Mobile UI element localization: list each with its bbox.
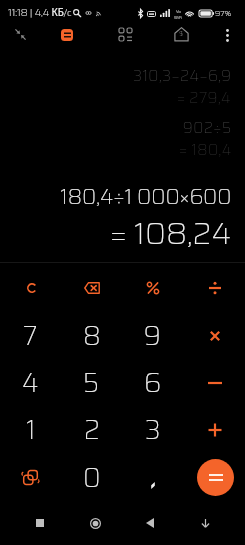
button[interactable]: Clear [1,264,62,311]
button[interactable]: % [122,264,183,311]
button[interactable]: 4 [0,359,61,406]
staticText: = 279,4 [177,86,232,110]
staticText: 310,3−24−6,9 [133,64,232,88]
button[interactable]: Home [80,508,110,538]
staticText: 4 [22,362,39,403]
staticText: = 108,24 [110,209,232,253]
button[interactable]: 3 [122,406,183,453]
button[interactable]: Minus [184,359,245,406]
button[interactable]: 7 [0,312,61,359]
button[interactable]: More options [212,22,242,48]
button[interactable]: 0 [61,454,122,501]
button[interactable]: Collapse [4,21,36,47]
staticText: 0 [83,457,101,498]
button[interactable]: 6 [122,359,183,406]
button[interactable]: Converter [110,21,140,47]
button[interactable]: 8 [61,312,122,359]
button[interactable]: Scientific mode [52,22,82,48]
button[interactable]: 2 [61,406,122,453]
staticText: 180,4÷1 000×600 [60,180,232,213]
button[interactable]: Back [135,508,165,538]
button[interactable]: Multiply [184,312,245,359]
staticText: $ [179,27,184,40]
staticText: 5 [83,362,100,403]
staticText: = 180,4 [179,138,232,162]
staticText: 2 [84,409,100,450]
staticText: 11:18 | 4,4 КБ/c [8,5,72,21]
button[interactable]: Recent apps [25,508,55,538]
button[interactable]: Backspace [61,264,122,311]
button[interactable]: 9 [122,312,183,359]
button[interactable]: Hide keyboard [190,508,220,538]
button[interactable]: Divide [184,264,245,311]
staticText: 8 [83,315,101,356]
button[interactable]: 1 [0,406,61,453]
staticText: 6 [144,362,161,403]
staticText: 902÷5 [183,116,232,140]
button[interactable]: Unit converter [0,454,61,501]
button[interactable]: Equals [197,459,234,496]
button[interactable]: , [122,454,183,501]
staticText: 97% [215,7,232,20]
staticText: 1 [26,409,36,450]
button[interactable]: 5 [61,359,122,406]
staticText: 3 [145,409,161,450]
staticText: 7 [23,315,38,356]
staticText: 9 [144,315,161,356]
button[interactable]: Plus [184,406,245,453]
staticText: WiFi [174,14,183,20]
button[interactable]: Mortgage [166,21,196,47]
staticText: Vo [176,8,181,14]
